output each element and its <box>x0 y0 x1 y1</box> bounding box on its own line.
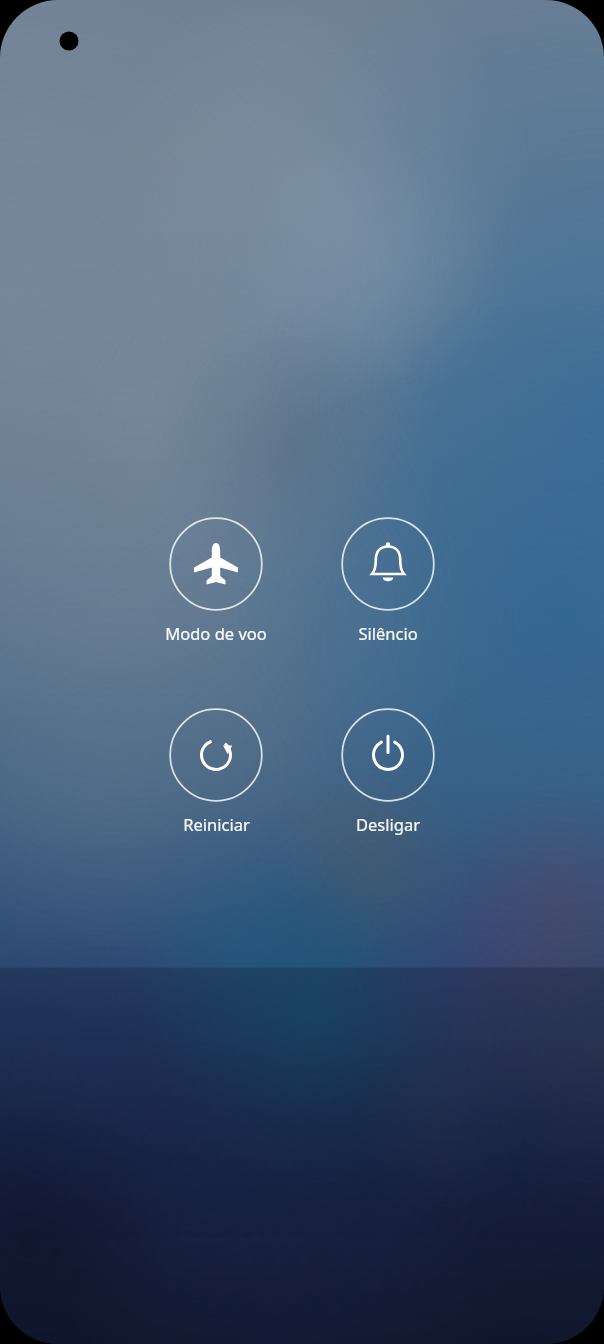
button[interactable]: Silêncio <box>341 517 435 644</box>
button[interactable]: Desligar <box>341 708 435 835</box>
button[interactable]: Reiniciar <box>169 708 263 835</box>
staticText: Reiniciar <box>183 813 250 835</box>
staticText: Silêncio <box>358 622 418 644</box>
staticText: Modo de voo <box>165 622 267 644</box>
staticText: Desligar <box>356 813 420 835</box>
button[interactable]: Modo de voo <box>165 517 267 644</box>
